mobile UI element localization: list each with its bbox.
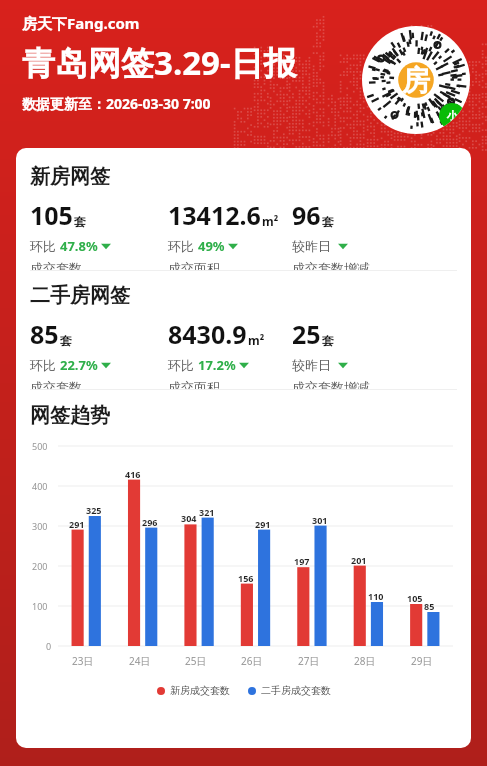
- button[interactable]: 85: [30, 317, 111, 389]
- staticText: 100: [32, 600, 48, 612]
- button[interactable]: 13412.6: [168, 198, 279, 270]
- staticText: 291: [69, 518, 85, 530]
- staticText: 304: [181, 512, 197, 524]
- staticText: 青岛网签3.29-日报: [22, 40, 297, 85]
- staticText: 套: [322, 214, 334, 229]
- staticText: 成交套数增减: [292, 260, 370, 270]
- staticText: 29日: [411, 654, 433, 668]
- button[interactable]: 二手房成交套数: [248, 684, 331, 697]
- staticText: 套: [322, 333, 334, 348]
- staticText: 小: [447, 109, 458, 123]
- staticText: 96: [292, 198, 321, 232]
- staticText: 套: [74, 214, 86, 229]
- staticText: 环比: [168, 237, 198, 255]
- staticText: m²: [262, 213, 279, 229]
- staticText: 26日: [241, 654, 263, 668]
- staticText: 85: [30, 317, 59, 351]
- staticText: 成交套数增减: [292, 379, 370, 389]
- staticText: 二手房网签: [30, 283, 130, 308]
- staticText: 二手房成交套数: [261, 684, 331, 697]
- staticText: 49%: [198, 237, 225, 255]
- staticText: 27日: [298, 654, 320, 668]
- staticText: 房: [402, 63, 430, 98]
- staticText: 8430.9: [168, 317, 247, 351]
- staticText: 201: [351, 554, 367, 566]
- staticText: 296: [142, 516, 158, 528]
- staticText: 500: [32, 440, 48, 452]
- staticText: 200: [32, 560, 48, 572]
- staticText: 300: [32, 520, 48, 532]
- staticText: 22.7%: [60, 356, 98, 374]
- staticText: 0: [46, 640, 52, 652]
- button[interactable]: 小程序码: [362, 26, 470, 134]
- staticText: 25日: [185, 654, 207, 668]
- staticText: 24日: [129, 654, 151, 668]
- staticText: 较昨日: [292, 356, 335, 374]
- staticText: 110: [368, 590, 384, 602]
- button[interactable]: 8430.9: [168, 317, 265, 389]
- staticText: 套: [60, 333, 72, 348]
- staticText: 25: [292, 317, 321, 351]
- staticText: 网签趋势: [30, 403, 110, 428]
- staticText: 成交套数: [30, 379, 82, 389]
- button[interactable]: 25: [292, 317, 370, 389]
- staticText: 197: [294, 555, 310, 567]
- staticText: 23日: [72, 654, 94, 668]
- button[interactable]: 新房成交套数: [157, 684, 230, 697]
- staticText: 较昨日: [292, 237, 335, 255]
- staticText: 105: [407, 592, 423, 604]
- staticText: 环比: [168, 356, 198, 374]
- staticText: 数据更新至：2026-03-30 7:00: [22, 94, 211, 113]
- staticText: 321: [199, 506, 215, 518]
- staticText: 291: [255, 518, 271, 530]
- staticText: 301: [312, 514, 328, 526]
- staticText: 325: [86, 504, 102, 516]
- staticText: 400: [32, 480, 48, 492]
- button[interactable]: 105: [30, 198, 111, 270]
- staticText: 成交面积: [168, 260, 220, 270]
- staticText: 416: [125, 468, 141, 480]
- staticText: 85: [424, 600, 435, 612]
- button[interactable]: 96: [292, 198, 370, 270]
- staticText: 105: [30, 198, 73, 232]
- staticText: m²: [248, 332, 265, 348]
- staticText: 成交套数: [30, 260, 82, 270]
- staticText: 新房成交套数: [170, 684, 230, 697]
- staticText: 17.2%: [198, 356, 236, 374]
- staticText: 环比: [30, 356, 60, 374]
- staticText: 156: [238, 572, 254, 584]
- staticText: 13412.6: [168, 198, 261, 232]
- staticText: 房天下Fang.com: [22, 13, 140, 33]
- staticText: 47.8%: [60, 237, 98, 255]
- staticText: 新房网签: [30, 164, 110, 189]
- staticText: 环比: [30, 237, 60, 255]
- staticText: 28日: [354, 654, 376, 668]
- staticText: 成交面积: [168, 379, 220, 389]
